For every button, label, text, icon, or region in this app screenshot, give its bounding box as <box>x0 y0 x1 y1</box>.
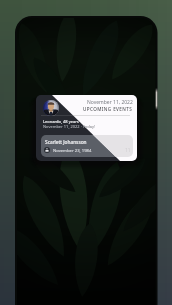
staticText: 11 <box>125 147 131 153</box>
button[interactable]: Contact photo <box>43 100 59 116</box>
staticText: November 11, 2022 · Today! <box>43 124 95 129</box>
staticText: UPCOMING EVENTS <box>83 106 133 112</box>
staticText: Scarlett Johansson <box>45 139 87 146</box>
staticText: Leonardo, 48 years <box>43 119 79 124</box>
staticText: November 11, 2022 <box>87 99 133 106</box>
staticText: November 11, 2022 · Today! <box>43 124 95 129</box>
staticText: November 11, 2022 <box>87 99 133 106</box>
staticText: Scarlett Johansson <box>45 139 87 146</box>
staticText: Leonardo, 48 years <box>43 119 79 124</box>
button[interactable]: Contact photo <box>36 95 137 161</box>
button[interactable]: Contact photo <box>43 100 59 116</box>
staticText: November 23, 1984 <box>53 148 92 154</box>
button[interactable]: Scarlett Johansson <box>41 135 133 157</box>
staticText: UPCOMING EVENTS <box>83 106 133 112</box>
staticText: 11 <box>125 147 131 153</box>
button[interactable]: Scarlett Johansson <box>41 135 133 157</box>
staticText: November 23, 1984 <box>53 148 92 154</box>
